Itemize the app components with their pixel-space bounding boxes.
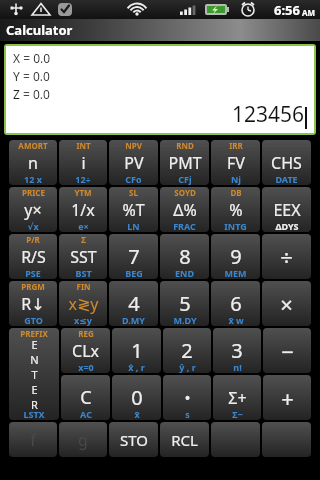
staticText: ΔDYS	[275, 220, 299, 232]
staticText: NPV	[125, 140, 142, 151]
staticText: 12÷	[75, 173, 91, 185]
button[interactable]: M.DY	[160, 281, 209, 326]
button[interactable]: Multiply	[262, 281, 311, 326]
staticText: +	[281, 383, 294, 413]
button[interactable]: s	[163, 375, 211, 420]
button[interactable]: IRR	[211, 140, 260, 185]
staticText: RCL	[171, 430, 198, 450]
staticText: 1	[131, 337, 143, 364]
button[interactable]: BEG	[109, 234, 158, 279]
staticText: GTO	[24, 314, 43, 326]
staticText: INTG	[224, 220, 247, 232]
button[interactable]: Σ−	[213, 375, 261, 420]
staticText: Y = 0.0	[13, 68, 50, 84]
staticText: Σ	[81, 234, 86, 245]
button[interactable]: AMORT	[9, 140, 57, 185]
staticText: LSTX	[23, 408, 45, 420]
staticText: T	[31, 367, 38, 382]
button[interactable]: RND	[160, 140, 209, 185]
staticText: CFj	[178, 173, 192, 185]
button[interactable]: ŷ , r	[163, 328, 211, 373]
staticText: REG	[78, 328, 94, 339]
button[interactable]: Divide	[262, 234, 311, 279]
button[interactable]: f	[9, 422, 57, 457]
button[interactable]: x̄ w	[211, 281, 260, 326]
staticText: n	[28, 152, 38, 174]
button[interactable]: Blank key 1	[211, 422, 260, 457]
staticText: FRAC	[173, 220, 196, 232]
button[interactable]: X = 0.0	[13, 50, 307, 129]
staticText: SL	[129, 187, 138, 198]
staticText: 3	[231, 337, 243, 364]
staticText: x̄ w	[228, 314, 244, 326]
staticText: x=0	[78, 361, 94, 373]
staticText: f	[30, 429, 36, 451]
staticText: M.DY	[173, 314, 197, 326]
button[interactable]: x̄	[112, 375, 161, 420]
staticText: Σ+	[228, 387, 247, 409]
staticText: D.MY	[122, 314, 145, 326]
button[interactable]: Subtract	[263, 328, 311, 373]
button[interactable]: x̂ , r	[112, 328, 161, 373]
staticText: R/S	[21, 246, 46, 268]
button[interactable]: NPV	[109, 140, 158, 185]
button[interactable]: MEM	[211, 234, 260, 279]
staticText: CHS	[271, 152, 302, 174]
staticText: CFo	[125, 173, 142, 185]
button[interactable]: SL	[109, 187, 158, 232]
staticText: R	[31, 397, 38, 412]
staticText: 7	[128, 243, 140, 270]
staticText: y×	[24, 199, 42, 221]
staticText: Nj	[231, 173, 241, 185]
button[interactable]: ΔDYS	[262, 187, 311, 232]
button[interactable]: END	[160, 234, 209, 279]
button[interactable]: SOYD	[160, 187, 209, 232]
staticText: n!	[233, 361, 242, 373]
staticText: −	[281, 336, 294, 366]
staticText: 2	[181, 337, 193, 364]
staticText: 6:56	[274, 1, 300, 19]
button[interactable]: REG	[61, 328, 110, 373]
staticText: 1/x	[71, 199, 95, 221]
staticText: INT	[76, 140, 91, 151]
staticText: X = 0.0	[13, 50, 51, 66]
button[interactable]: PRICE	[9, 187, 57, 232]
staticText: 4	[128, 290, 140, 317]
staticText: AM	[302, 7, 316, 18]
button[interactable]: INT	[59, 140, 107, 185]
staticText: Calculator	[6, 21, 73, 39]
staticText: g	[78, 429, 88, 451]
button[interactable]: P/R	[9, 234, 57, 279]
button[interactable]: PRGM	[9, 281, 57, 326]
staticText: 12 x	[24, 173, 42, 185]
staticText: x̂ , r	[128, 361, 145, 373]
staticText: FV	[227, 152, 245, 174]
button[interactable]: DB	[211, 187, 260, 232]
button[interactable]: RCL	[160, 422, 209, 457]
staticText: Δ%	[173, 199, 197, 221]
button[interactable]: AC	[61, 375, 110, 420]
staticText: ×	[280, 289, 293, 319]
staticText: AMORT	[18, 140, 48, 151]
staticText: 123456	[232, 100, 305, 129]
button[interactable]: STO	[109, 422, 158, 457]
staticText: s	[185, 408, 190, 420]
button[interactable]: Add	[263, 375, 311, 420]
staticText: PRGM	[21, 281, 45, 292]
button[interactable]: Enter	[9, 328, 59, 420]
staticText: ŷ , r	[179, 361, 196, 373]
staticText: Σ−	[232, 408, 243, 420]
button[interactable]: n!	[213, 328, 261, 373]
button[interactable]: Σ	[59, 234, 107, 279]
staticText: BEG	[125, 267, 143, 279]
button[interactable]: YTM	[59, 187, 107, 232]
button[interactable]: DATE	[262, 140, 311, 185]
button[interactable]: D.MY	[109, 281, 158, 326]
staticText: PRICE	[22, 187, 45, 198]
button[interactable]: g	[59, 422, 107, 457]
staticText: E	[31, 337, 38, 352]
staticText: x≤y	[74, 314, 92, 326]
button[interactable]: Blank key 2	[262, 422, 311, 457]
button[interactable]: FIN	[59, 281, 107, 326]
staticText: •	[184, 387, 191, 409]
